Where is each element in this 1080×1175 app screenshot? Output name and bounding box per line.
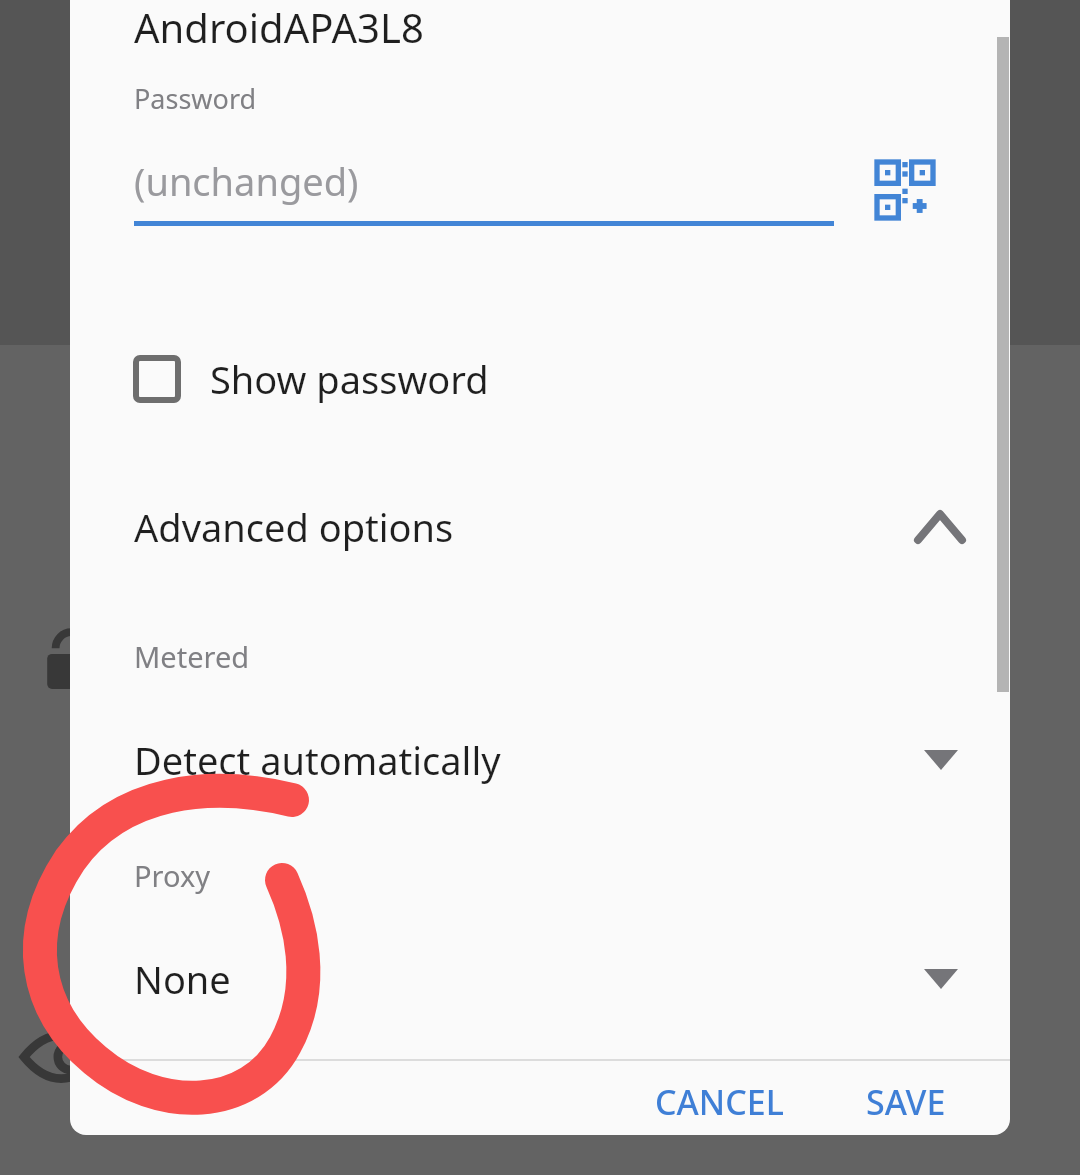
- staticText: SAVE: [866, 1079, 946, 1117]
- button[interactable]: Advanced options: [70, 479, 1010, 575]
- staticText: Show password: [210, 353, 489, 405]
- staticText: AndroidAPA3L8: [134, 0, 424, 54]
- button[interactable]: Show password: [70, 331, 1010, 427]
- staticText: (unchanged): [134, 155, 359, 207]
- staticText: Metered: [134, 637, 250, 676]
- staticText: Proxy: [134, 856, 211, 895]
- button[interactable]: Scan QR code: [866, 151, 944, 229]
- staticText: None: [134, 953, 924, 1005]
- staticText: CANCEL: [655, 1079, 784, 1117]
- button[interactable]: SAVE: [838, 1061, 974, 1135]
- button[interactable]: Detect automatically: [70, 718, 1010, 802]
- button[interactable]: None: [70, 937, 1010, 1021]
- staticText: Advanced options: [134, 501, 918, 553]
- button[interactable]: CANCEL: [627, 1061, 812, 1135]
- staticText: Password: [134, 80, 257, 117]
- staticText: Detect automatically: [134, 734, 924, 786]
